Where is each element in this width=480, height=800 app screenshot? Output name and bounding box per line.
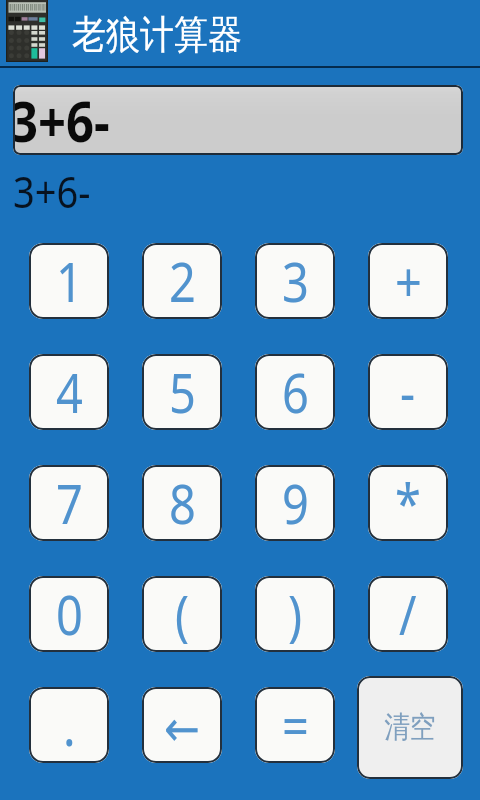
button[interactable]: Divide bbox=[368, 576, 448, 652]
staticText: ← bbox=[164, 700, 201, 758]
button[interactable]: Multiply bbox=[368, 465, 448, 541]
button[interactable]: Clear bbox=[357, 676, 463, 779]
staticText: 1 bbox=[56, 244, 83, 318]
staticText: 3 bbox=[282, 244, 309, 318]
button[interactable]: 9 bbox=[255, 465, 335, 541]
button[interactable]: Equals bbox=[255, 687, 335, 763]
staticText: 8 bbox=[169, 466, 196, 540]
staticText: 6 bbox=[282, 355, 309, 429]
button[interactable]: 1 bbox=[29, 243, 109, 319]
staticText: 5 bbox=[169, 355, 196, 429]
staticText: 9 bbox=[282, 466, 309, 540]
button[interactable]: Plus bbox=[368, 243, 448, 319]
staticText: ) bbox=[288, 577, 303, 651]
button[interactable]: 7 bbox=[29, 465, 109, 541]
button[interactable]: 3 bbox=[255, 243, 335, 319]
staticText: 2 bbox=[169, 244, 196, 318]
staticText: 0 bbox=[56, 577, 83, 651]
button[interactable]: Decimal point bbox=[29, 687, 109, 763]
staticText: 7 bbox=[56, 466, 83, 540]
staticText: . bbox=[63, 688, 76, 762]
staticText: * bbox=[395, 466, 421, 540]
button[interactable]: 4 bbox=[29, 354, 109, 430]
staticText: 3+6- bbox=[13, 161, 91, 221]
button[interactable]: Left parenthesis bbox=[142, 576, 222, 652]
button[interactable]: Right parenthesis bbox=[255, 576, 335, 652]
staticText: / bbox=[399, 577, 417, 651]
button[interactable]: 8 bbox=[142, 465, 222, 541]
button[interactable]: 2 bbox=[142, 243, 222, 319]
button[interactable]: Expression input bbox=[13, 85, 463, 155]
button[interactable]: 6 bbox=[255, 354, 335, 430]
staticText: ( bbox=[175, 577, 190, 651]
staticText: + bbox=[395, 244, 422, 318]
button[interactable]: 5 bbox=[142, 354, 222, 430]
button[interactable]: Minus bbox=[368, 354, 448, 430]
staticText: 清空 bbox=[384, 708, 436, 746]
staticText: - bbox=[400, 355, 416, 429]
other: Calculator app icon bbox=[6, 0, 48, 62]
staticText: 老狼计算器 bbox=[72, 10, 242, 59]
button[interactable]: Backspace bbox=[142, 687, 222, 763]
button[interactable]: 0 bbox=[29, 576, 109, 652]
staticText: 3+6- bbox=[13, 85, 110, 155]
staticText: = bbox=[282, 688, 309, 762]
staticText: 4 bbox=[56, 355, 83, 429]
